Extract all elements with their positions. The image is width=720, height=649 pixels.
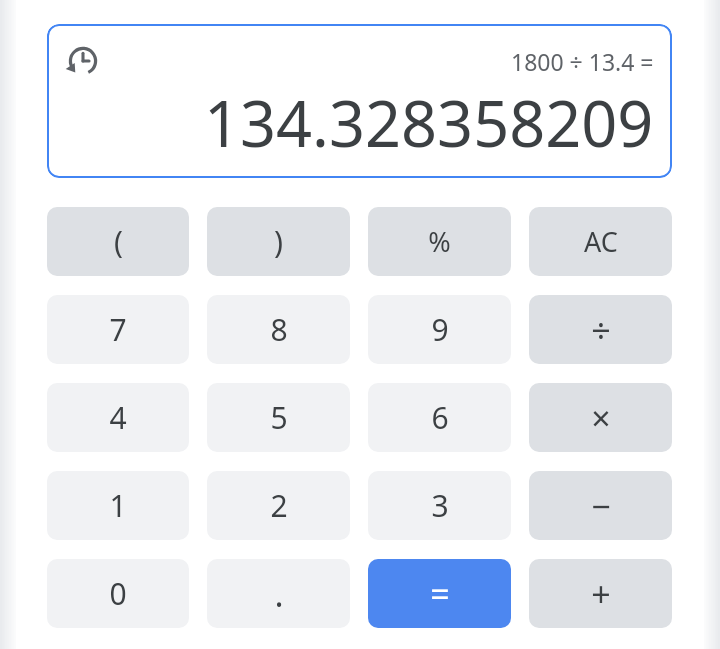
- staticText: 3: [431, 485, 449, 526]
- staticText: ÷: [591, 307, 611, 353]
- staticText: ): [274, 221, 283, 262]
- button[interactable]: 7: [47, 295, 189, 364]
- button[interactable]: +: [529, 559, 672, 628]
- staticText: −: [591, 483, 611, 529]
- button[interactable]: 5: [207, 383, 350, 452]
- button[interactable]: (: [47, 207, 189, 276]
- staticText: 7: [109, 309, 127, 350]
- button[interactable]: History: [63, 41, 103, 81]
- staticText: %: [428, 223, 451, 260]
- staticText: 4: [109, 397, 127, 438]
- button[interactable]: ×: [529, 383, 672, 452]
- staticText: 5: [270, 397, 288, 438]
- button[interactable]: %: [368, 207, 511, 276]
- button[interactable]: AC: [529, 207, 672, 276]
- staticText: ×: [591, 395, 611, 441]
- staticText: AC: [584, 223, 618, 260]
- staticText: 8: [270, 309, 288, 350]
- staticText: .: [274, 571, 284, 617]
- button[interactable]: 8: [207, 295, 350, 364]
- staticText: 134.328358209: [204, 80, 654, 166]
- staticText: 9: [431, 309, 449, 350]
- staticText: +: [591, 571, 611, 617]
- button[interactable]: 9: [368, 295, 511, 364]
- staticText: 1: [109, 485, 127, 526]
- staticText: 0: [109, 573, 127, 614]
- button[interactable]: History: [47, 24, 672, 178]
- button[interactable]: −: [529, 471, 672, 540]
- button[interactable]: 0: [47, 559, 189, 628]
- staticText: 6: [431, 397, 449, 438]
- button[interactable]: =: [368, 559, 511, 628]
- staticText: 2: [270, 485, 288, 526]
- button[interactable]: 3: [368, 471, 511, 540]
- staticText: 1800 ÷ 13.4 =: [511, 46, 654, 77]
- button[interactable]: ): [207, 207, 350, 276]
- button[interactable]: 6: [368, 383, 511, 452]
- staticText: (: [114, 221, 123, 262]
- button[interactable]: .: [207, 559, 350, 628]
- button[interactable]: 4: [47, 383, 189, 452]
- button[interactable]: 1: [47, 471, 189, 540]
- button[interactable]: ÷: [529, 295, 672, 364]
- button[interactable]: 2: [207, 471, 350, 540]
- staticText: =: [430, 571, 450, 617]
